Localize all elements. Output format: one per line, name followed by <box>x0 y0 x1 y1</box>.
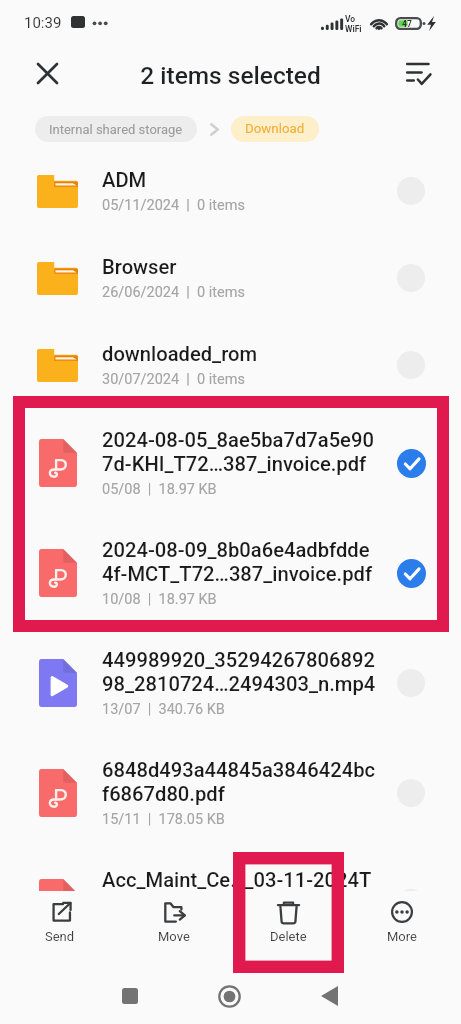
staticText: downloaded_rom <box>102 342 258 366</box>
staticText: 05/11/2024 | 0 items <box>102 197 245 214</box>
staticText: 10/08 | 18.97 KB <box>102 591 217 608</box>
button[interactable]: 6848d493a44845a3846424bc f6867d80.pdf <box>0 738 461 848</box>
staticText: 2024-08-05_8ae5ba7d7a5e90 7d-KHI_T72…387… <box>102 428 374 476</box>
staticText: 17/11 | 92.14 KB <box>102 921 217 938</box>
staticText: 30/07/2024 | 0 items <box>102 371 245 388</box>
staticText: Internal shared storage <box>49 122 183 137</box>
button[interactable]: Home <box>206 973 252 1019</box>
button[interactable]: Browser <box>0 234 461 321</box>
staticText: 26/06/2024 | 0 items <box>102 284 245 301</box>
button[interactable]: 2024-08-09_8b0a6e4adbfdde 4f-MCT_T72…387… <box>0 518 461 628</box>
staticText: WiFi <box>345 24 362 34</box>
button[interactable]: Send <box>13 899 107 951</box>
button[interactable]: 449989920_35294267806892 98_2810724…2494… <box>0 628 461 738</box>
button[interactable]: Download <box>231 116 319 142</box>
staticText: 2024-08-09_8b0a6e4adbfdde 4f-MCT_T72…387… <box>102 538 373 586</box>
button[interactable]: Back <box>306 973 352 1019</box>
staticText: Acc_Maint_Ce…_03-11-2024T 09_51_22.pdf <box>102 868 372 916</box>
button[interactable]: Move <box>127 899 221 951</box>
staticText: 47 <box>402 19 412 29</box>
staticText: Send <box>45 929 75 944</box>
button[interactable]: Recents <box>107 973 153 1019</box>
button[interactable]: Internal shared storage <box>35 116 197 142</box>
button[interactable]: ADM <box>0 147 461 234</box>
staticText: ADM <box>102 168 147 192</box>
button[interactable]: More <box>355 899 449 951</box>
staticText: 6848d493a44845a3846424bc f6867d80.pdf <box>102 758 376 806</box>
staticText: 13/07 | 340.76 KB <box>102 701 225 718</box>
staticText: Browser <box>102 255 177 279</box>
staticText: More <box>387 929 417 944</box>
button[interactable]: Acc_Maint_Ce…_03-11-2024T 09_51_22.pdf <box>0 848 461 958</box>
staticText: 2 items selected <box>0 61 461 90</box>
staticText: Move <box>158 929 190 944</box>
staticText: 449989920_35294267806892 98_2810724…2494… <box>102 648 376 696</box>
staticText: Download <box>245 121 305 137</box>
button[interactable]: Select all <box>394 50 442 98</box>
staticText: 10:39 <box>24 14 62 32</box>
staticText: Delete <box>270 929 307 944</box>
button[interactable]: downloaded_rom <box>0 321 461 408</box>
staticText: 05/08 | 18.97 KB <box>102 481 217 498</box>
button[interactable]: Delete <box>241 899 335 951</box>
staticText: 15/11 | 178.05 KB <box>102 811 225 828</box>
button[interactable]: 2024-08-05_8ae5ba7d7a5e90 7d-KHI_T72…387… <box>0 408 461 518</box>
staticText: Vo <box>345 14 356 24</box>
button[interactable]: Close <box>23 49 71 97</box>
